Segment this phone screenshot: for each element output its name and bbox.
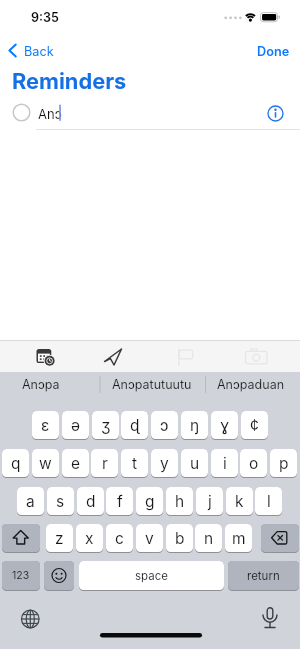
button[interactable] [99, 343, 127, 370]
staticText: h [175, 492, 185, 511]
staticText: f [117, 492, 123, 511]
button[interactable]: u [181, 449, 208, 477]
staticText: space [135, 569, 168, 583]
staticText: q [11, 454, 21, 473]
staticText: ɣ [220, 416, 230, 435]
button[interactable]: x [76, 524, 103, 552]
button[interactable]: g [136, 487, 163, 515]
staticText: 123 [12, 569, 30, 582]
staticText: c [115, 529, 124, 548]
button[interactable]: ʒ [92, 411, 119, 439]
staticText: ŋ [190, 416, 200, 435]
button[interactable]: f [106, 487, 133, 515]
button[interactable]: q [2, 449, 29, 477]
button[interactable]: ə [62, 411, 89, 439]
button[interactable]: r [91, 449, 118, 477]
button[interactable]: n [195, 524, 222, 552]
staticText: return [247, 569, 280, 583]
staticText: ɔ [160, 416, 169, 435]
button[interactable]: d [77, 487, 104, 515]
button[interactable] [0, 373, 99, 396]
button[interactable]: ɖ [121, 411, 148, 439]
staticText: ʒ [101, 416, 111, 435]
button[interactable] [6, 41, 54, 60]
staticText: d [86, 492, 96, 511]
staticText: l [267, 492, 271, 511]
button[interactable]: w [32, 449, 59, 477]
staticText: s [56, 492, 65, 511]
staticText: Back [24, 44, 54, 59]
staticText: ¢ [250, 416, 259, 435]
button[interactable] [261, 524, 299, 552]
button[interactable]: v [136, 524, 163, 552]
staticText: j [208, 492, 212, 511]
button[interactable] [255, 605, 285, 635]
staticText: x [85, 529, 94, 548]
button[interactable] [172, 343, 200, 370]
staticText: m [232, 529, 246, 548]
button[interactable] [2, 524, 40, 552]
staticText: i [223, 454, 227, 473]
staticText: Anɔ [38, 106, 62, 122]
button[interactable]: o [240, 449, 267, 477]
staticText: 9:35 [31, 10, 59, 25]
button[interactable]: 123 [2, 561, 40, 590]
button[interactable] [16, 605, 46, 635]
staticText: p [279, 454, 289, 473]
staticText: Anɔpaduan [217, 377, 285, 392]
button[interactable] [253, 41, 291, 60]
staticText: u [190, 454, 200, 473]
staticText: g [145, 492, 155, 511]
staticText: v [145, 529, 154, 548]
staticText: r [102, 454, 108, 473]
staticText: y [160, 454, 169, 473]
staticText: b [175, 529, 185, 548]
button[interactable]: j [196, 487, 223, 515]
button[interactable]: ¢ [241, 411, 268, 439]
button[interactable]: space [79, 561, 224, 590]
button[interactable]: ɛ [32, 411, 59, 439]
button[interactable]: k [226, 487, 253, 515]
button[interactable]: b [166, 524, 193, 552]
button[interactable]: ŋ [181, 411, 208, 439]
staticText: Done [257, 44, 290, 59]
button[interactable]: e [62, 449, 89, 477]
staticText: w [39, 454, 52, 473]
button[interactable] [206, 373, 300, 396]
staticText: o [249, 454, 259, 473]
button[interactable] [44, 561, 74, 590]
staticText: e [71, 454, 81, 473]
button[interactable]: a [17, 487, 44, 515]
button[interactable]: z [46, 524, 73, 552]
button[interactable]: y [151, 449, 178, 477]
button[interactable] [242, 343, 270, 370]
button[interactable]: ɣ [211, 411, 238, 439]
button[interactable]: i [211, 449, 238, 477]
button[interactable]: p [270, 449, 297, 477]
button[interactable]: h [166, 487, 193, 515]
staticText: t [132, 454, 138, 473]
button[interactable] [0, 96, 300, 130]
staticText: n [204, 529, 214, 548]
staticText: Anɔpa [22, 377, 60, 392]
staticText: z [55, 529, 64, 548]
staticText: Anɔpatutuutu [112, 377, 192, 392]
button[interactable]: t [121, 449, 148, 477]
button[interactable]: m [225, 524, 252, 552]
button[interactable]: l [255, 487, 282, 515]
button[interactable] [264, 102, 287, 125]
staticText: ɛ [41, 416, 50, 435]
button[interactable]: c [106, 524, 133, 552]
staticText: Reminders [12, 68, 127, 94]
button[interactable]: s [47, 487, 74, 515]
staticText: k [235, 492, 244, 511]
button[interactable]: return [228, 561, 299, 590]
staticText: ɖ [130, 416, 140, 435]
button[interactable]: ɔ [151, 411, 178, 439]
button[interactable] [30, 343, 58, 370]
staticText: ə [71, 416, 81, 435]
button[interactable] [100, 373, 205, 396]
staticText: a [26, 492, 35, 511]
